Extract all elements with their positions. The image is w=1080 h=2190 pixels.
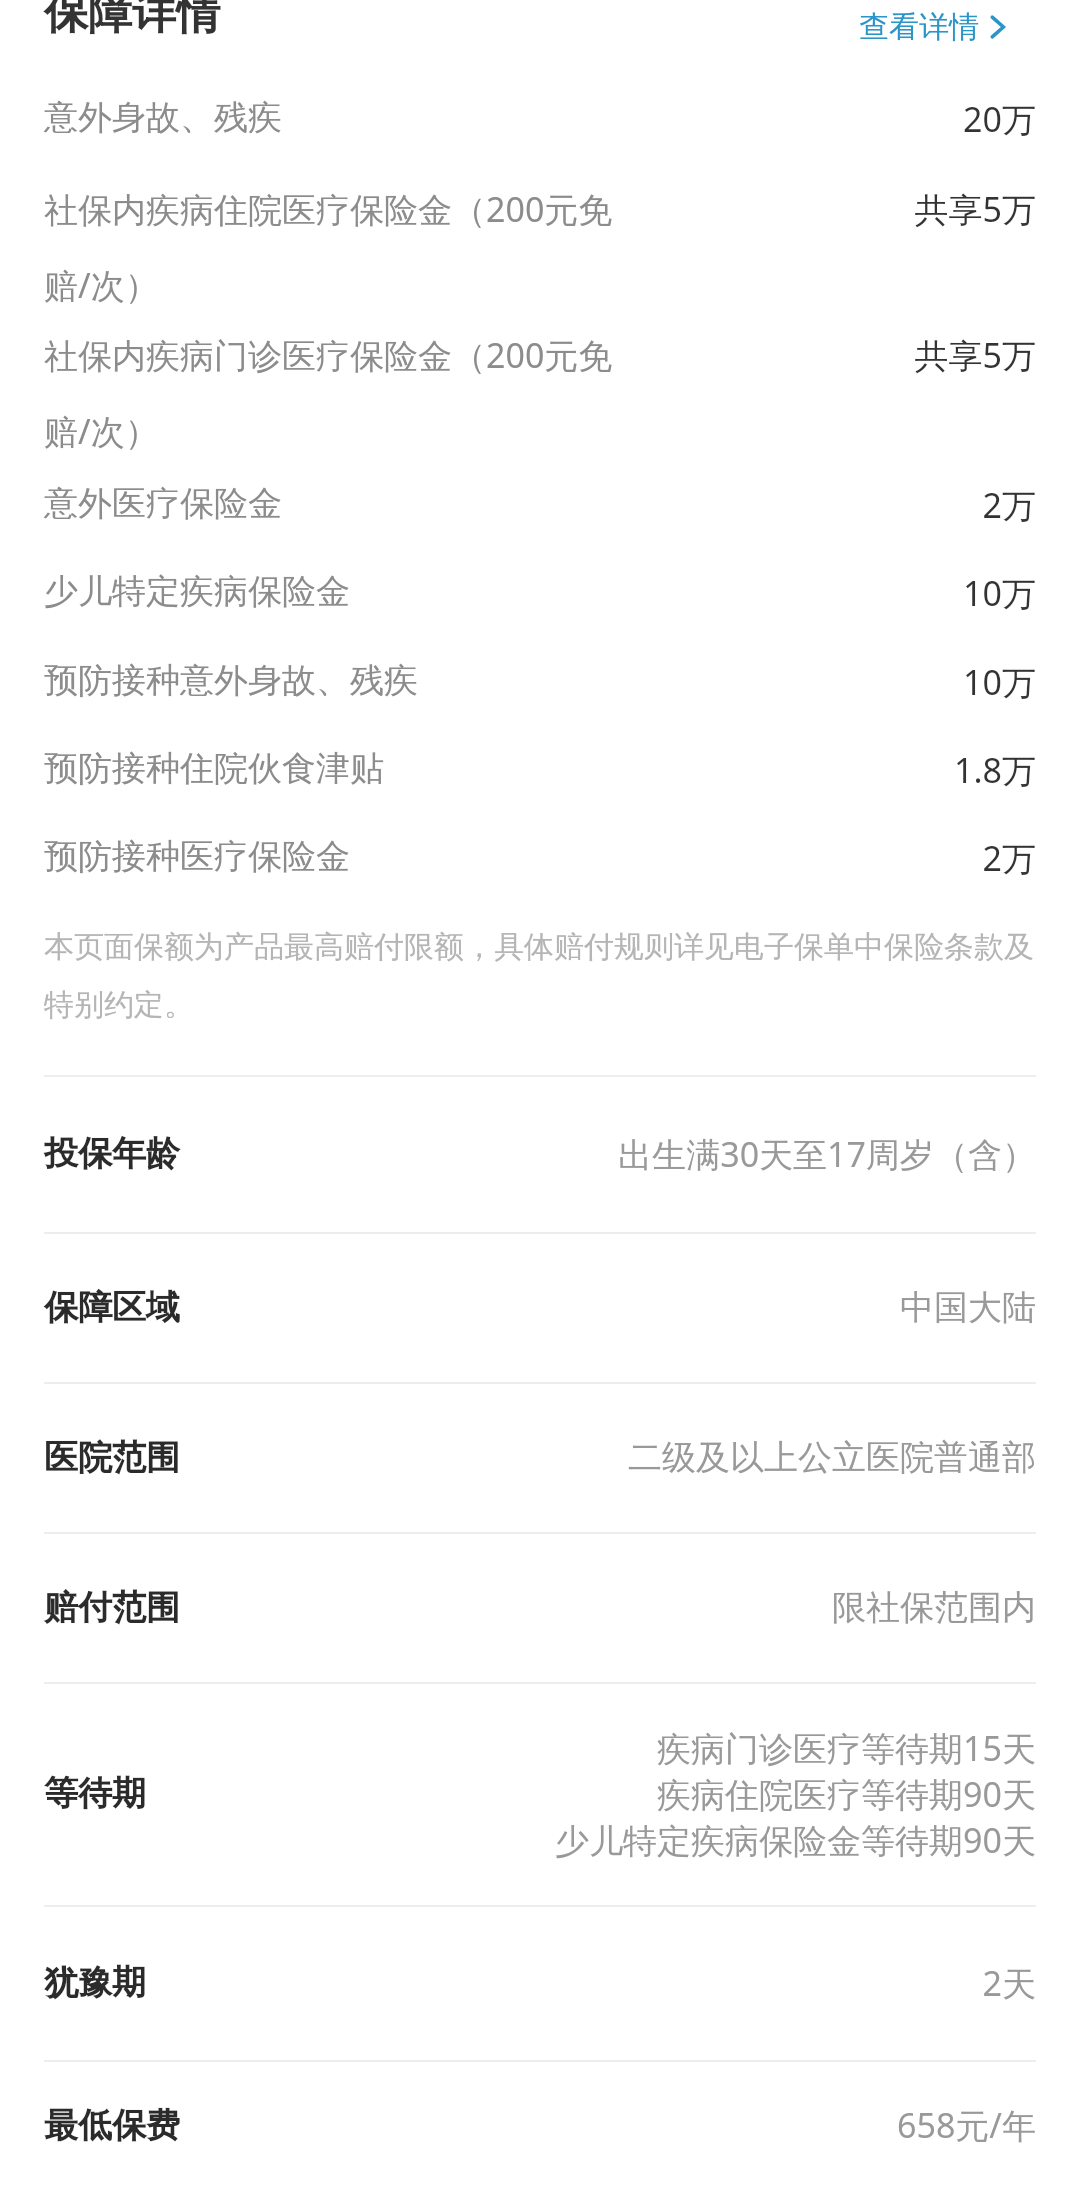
staticText: 共享5万: [914, 186, 1036, 232]
button[interactable]: 投保年龄: [0, 1075, 1080, 1232]
staticText: 中国大陆: [900, 1286, 1036, 1329]
staticText: 10万: [963, 659, 1036, 705]
button[interactable]: 社保内疾病住院医疗保险金（200元免赔/次）: [0, 186, 1080, 332]
staticText: 10万: [963, 570, 1036, 616]
staticText: 2万: [982, 835, 1036, 881]
staticText: 医院范围: [44, 1436, 180, 1479]
staticText: 保障区域: [44, 1286, 180, 1329]
staticText: 意外医疗保险金: [44, 482, 282, 525]
staticText: 查看详情: [859, 8, 979, 46]
staticText: 赔付范围: [44, 1586, 180, 1629]
staticText: 共享5万: [914, 332, 1036, 378]
staticText: 658元/年: [897, 2102, 1036, 2148]
staticText: 意外身故、残疾: [44, 96, 282, 139]
staticText: 出生满30天至17周岁（含）: [618, 1131, 1036, 1177]
staticText: 保障详情: [44, 0, 220, 41]
button[interactable]: 最低保费: [0, 2060, 1080, 2190]
button[interactable]: 预防接种意外身故、残疾: [0, 659, 1080, 747]
staticText: 二级及以上公立医院普通部: [628, 1436, 1036, 1479]
staticText: 社保内疾病住院医疗保险金（200元免赔/次）: [44, 186, 644, 308]
staticText: 最低保费: [44, 2104, 180, 2147]
button[interactable]: 赔付范围: [0, 1532, 1080, 1682]
staticText: 疾病门诊医疗等待期15天: [657, 1725, 1036, 1771]
staticText: 犹豫期: [44, 1961, 146, 2004]
button[interactable]: 保障区域: [0, 1232, 1080, 1382]
staticText: 限社保范围内: [832, 1586, 1036, 1629]
button[interactable]: 少儿特定疾病保险金: [0, 570, 1080, 658]
button[interactable]: 医院范围: [0, 1382, 1080, 1532]
button[interactable]: 预防接种住院伙食津贴: [0, 747, 1080, 835]
button[interactable]: 意外身故、残疾: [0, 96, 1080, 184]
staticText: 预防接种意外身故、残疾: [44, 659, 418, 702]
button[interactable]: 查看详情: [855, 2, 1011, 52]
staticText: 预防接种住院伙食津贴: [44, 747, 384, 790]
staticText: 少儿特定疾病保险金等待期90天: [555, 1817, 1036, 1863]
staticText: 20万: [963, 96, 1036, 142]
staticText: 疾病住院医疗等待期90天: [657, 1771, 1036, 1817]
button[interactable]: 保障详情: [44, 0, 220, 41]
staticText: 1.8万: [953, 747, 1036, 793]
button[interactable]: 犹豫期: [0, 1905, 1080, 2060]
button[interactable]: 社保内疾病门诊医疗保险金（200元免赔/次）: [0, 332, 1080, 478]
staticText: 投保年龄: [44, 1132, 180, 1175]
staticText: 少儿特定疾病保险金: [44, 570, 350, 613]
button[interactable]: 等待期: [0, 1682, 1080, 1905]
staticText: 等待期: [44, 1772, 146, 1815]
button[interactable]: 预防接种医疗保险金: [0, 835, 1080, 923]
button[interactable]: 意外医疗保险金: [0, 482, 1080, 570]
staticText: 2天: [982, 1960, 1036, 2006]
staticText: 预防接种医疗保险金: [44, 835, 350, 878]
staticText: 社保内疾病门诊医疗保险金（200元免赔/次）: [44, 332, 644, 454]
staticText: 本页面保额为产品最高赔付限额，具体赔付规则详见电子保单中保险条款及特别约定。: [44, 928, 1034, 1024]
staticText: 2万: [982, 482, 1036, 528]
